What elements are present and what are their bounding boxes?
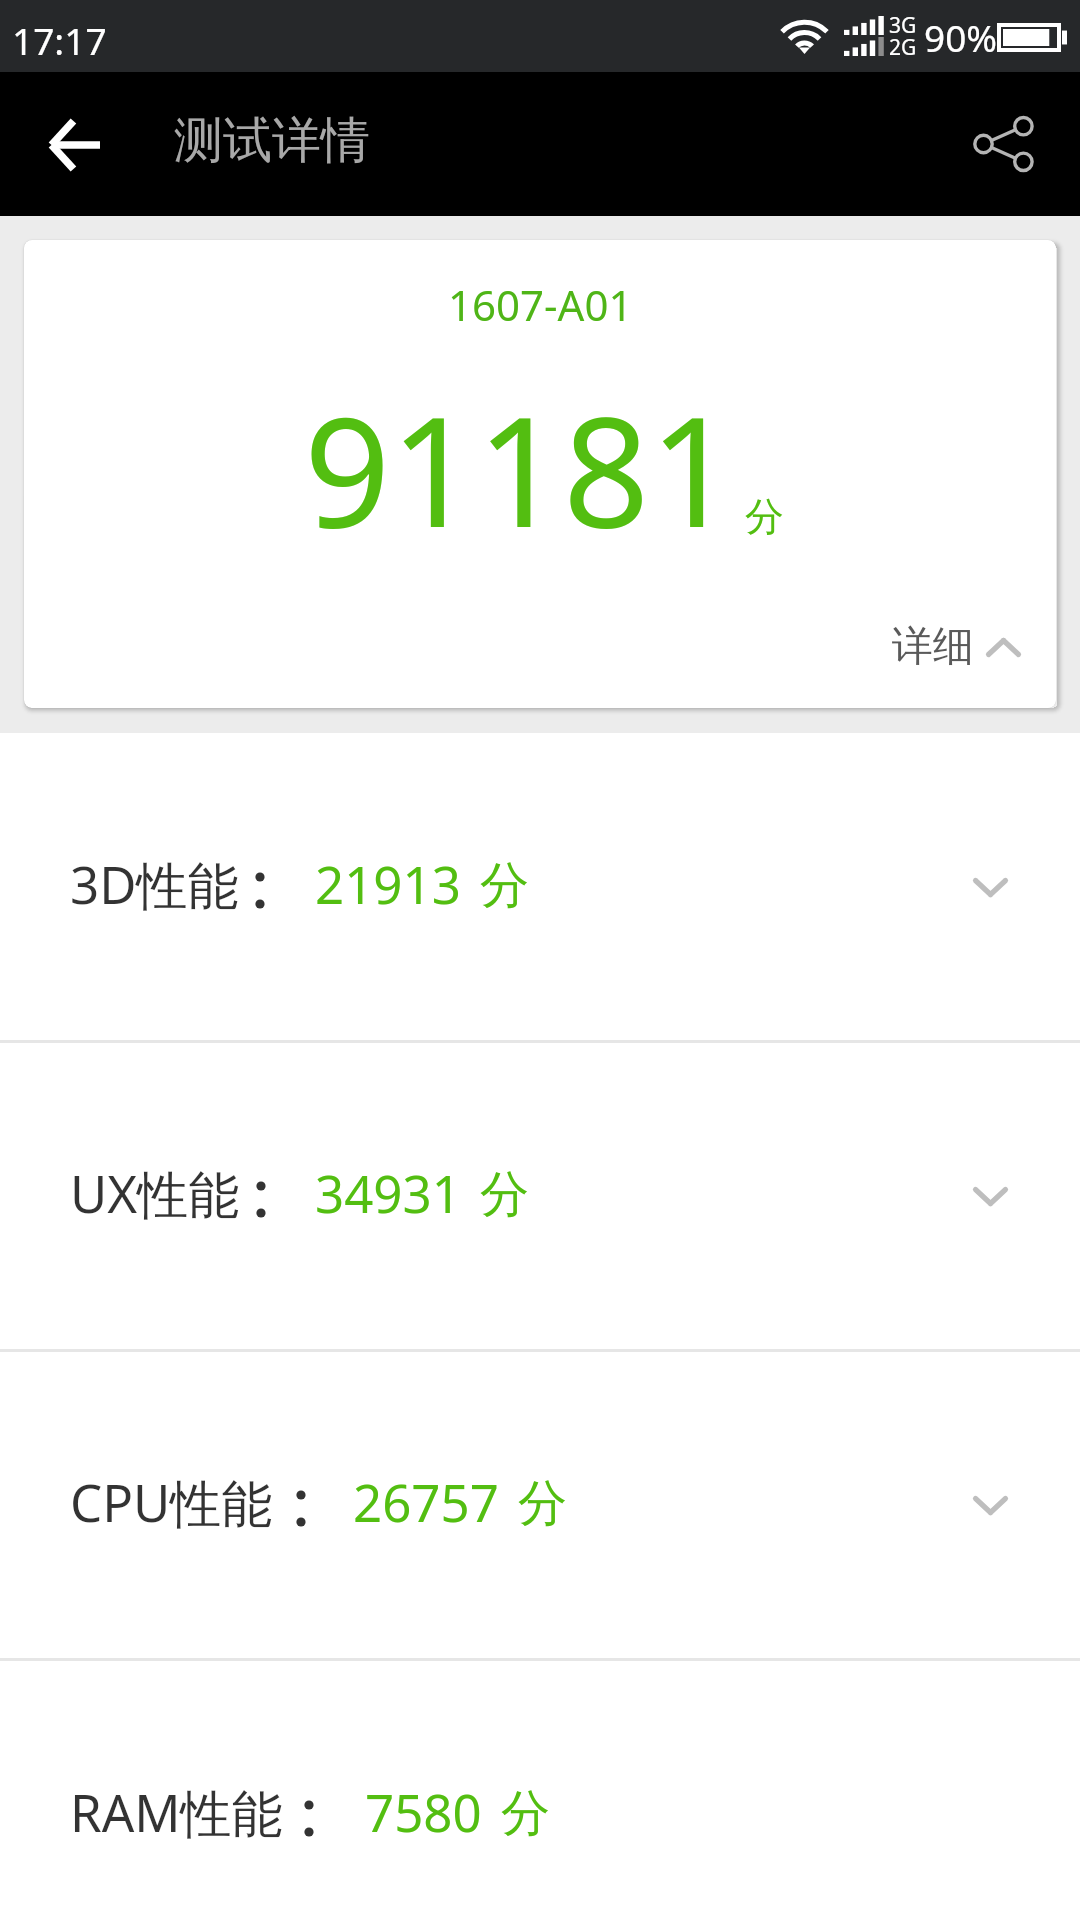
staticText: 3G — [889, 11, 917, 40]
staticText: 3D性能： — [70, 849, 290, 919]
staticText: 2G — [889, 33, 917, 62]
button[interactable]: Expand — [950, 1156, 1030, 1236]
staticText: 分 — [745, 492, 784, 541]
button[interactable]: Expand — [950, 1465, 1030, 1545]
staticText: CPU性能： — [70, 1467, 324, 1537]
button[interactable]: Share — [955, 96, 1051, 192]
staticText: 91181 — [304, 366, 736, 572]
staticText: 分 — [518, 1473, 567, 1535]
staticText: 26757 — [353, 1467, 499, 1536]
button[interactable]: CPU性能： — [0, 1352, 1080, 1658]
staticText: RAM性能： — [70, 1777, 334, 1847]
staticText: 详细 — [892, 621, 974, 673]
staticText: 21913 — [315, 849, 461, 918]
staticText: UX性能： — [70, 1158, 291, 1228]
button[interactable]: Back — [28, 98, 122, 192]
button[interactable]: UX性能： — [0, 1043, 1080, 1349]
button[interactable]: RAM性能： — [0, 1661, 1080, 1920]
button[interactable]: 1607-A01 — [24, 240, 1056, 708]
staticText: 90% — [924, 12, 998, 62]
button[interactable]: 3D性能： — [0, 733, 1080, 1040]
staticText: 34931 — [315, 1158, 461, 1227]
staticText: 17:17 — [12, 15, 107, 65]
staticText: 分 — [480, 855, 529, 917]
button[interactable]: 详细 — [892, 621, 1021, 673]
staticText: 测试详情 — [174, 110, 370, 172]
staticText: 分 — [480, 1164, 529, 1226]
staticText: 1607-A01 — [448, 276, 633, 333]
staticText: 分 — [501, 1783, 550, 1845]
button[interactable]: Expand — [950, 847, 1030, 927]
staticText: 7580 — [365, 1777, 482, 1846]
